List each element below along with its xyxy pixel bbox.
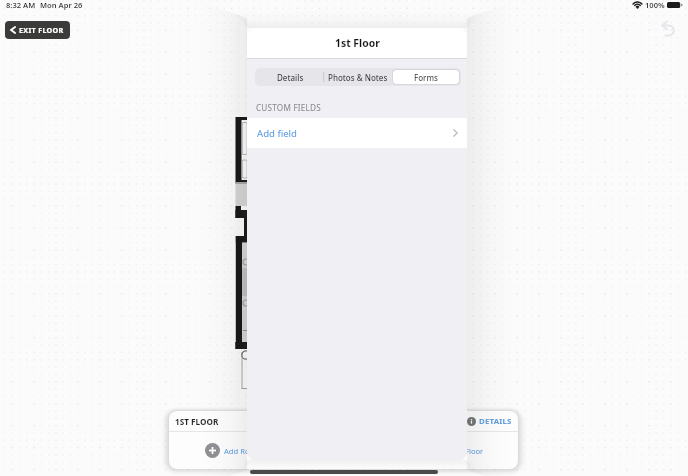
button[interactable]: Forms: [393, 70, 459, 84]
staticText: Add field: [257, 127, 297, 140]
staticText: DETAILS: [479, 416, 512, 427]
button[interactable]: DETAILS: [467, 416, 512, 427]
button[interactable]: Add field: [247, 118, 467, 148]
button[interactable]: EXIT FLOOR: [5, 21, 70, 39]
staticText: 1st Floor: [335, 36, 380, 50]
staticText: Floor: [465, 446, 484, 456]
staticText: Add Room: [224, 446, 262, 456]
staticText: 8:32 AM: [6, 0, 36, 10]
button[interactable]: Photos & Notes: [324, 69, 392, 85]
button[interactable]: Details: [256, 69, 324, 85]
staticText: Details: [277, 72, 304, 83]
button[interactable]: Undo: [659, 19, 679, 39]
staticText: Mon Apr 26: [40, 0, 83, 10]
staticText: EXIT FLOOR: [19, 25, 64, 35]
staticText: CUSTOM FIELDS: [256, 102, 321, 113]
staticText: Forms: [414, 72, 438, 83]
staticText: 1ST FLOOR: [175, 416, 219, 427]
staticText: Photos & Notes: [328, 72, 388, 83]
button[interactable]: Add Room: [205, 443, 262, 458]
staticText: 100%: [645, 0, 665, 10]
